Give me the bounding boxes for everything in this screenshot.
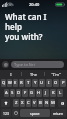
- staticText: T: [27, 80, 30, 86]
- staticText: W: [8, 80, 12, 86]
- button[interactable]: K: [50, 89, 56, 97]
- button[interactable]: P: [60, 79, 66, 87]
- staticText: E: [14, 80, 17, 86]
- staticText: The: [30, 72, 37, 77]
- button[interactable]: S: [10, 89, 15, 97]
- staticText: O: [54, 80, 58, 86]
- staticText: B: [39, 100, 42, 106]
- button[interactable]: Y: [32, 79, 38, 87]
- staticText: K: [52, 90, 55, 96]
- button[interactable]: space: [20, 109, 50, 117]
- staticText: U: [40, 80, 44, 86]
- button[interactable]: E: [13, 79, 18, 87]
- staticText: H: [37, 90, 41, 96]
- button[interactable]: F: [22, 89, 28, 97]
- staticText: G: [30, 90, 34, 96]
- staticText: X: [21, 100, 24, 106]
- button[interactable]: Type to Siri: [11, 61, 64, 68]
- staticText: space: [30, 111, 40, 116]
- button[interactable]: "I'm": [45, 70, 67, 78]
- button[interactable]: Siri: [2, 61, 9, 68]
- staticText: Type to Siri: [14, 62, 35, 67]
- button[interactable]: I: [46, 79, 52, 87]
- button[interactable]: U: [39, 79, 45, 87]
- button[interactable]: X: [20, 99, 25, 107]
- staticText: F: [24, 90, 27, 96]
- staticText: A: [5, 90, 8, 96]
- staticText: I: [48, 80, 50, 86]
- button[interactable]: G: [29, 89, 35, 97]
- button[interactable]: O: [53, 79, 59, 87]
- button[interactable]: M: [50, 99, 55, 107]
- staticText: P: [62, 80, 65, 86]
- button[interactable]: A: [4, 89, 9, 97]
- button[interactable]: 123: [1, 109, 11, 117]
- button[interactable]: Emoji: [12, 109, 19, 117]
- button[interactable]: N: [44, 99, 49, 107]
- button[interactable]: Shift: [1, 99, 10, 107]
- staticText: D: [17, 90, 21, 96]
- staticText: 20:40: [29, 2, 40, 7]
- button[interactable]: L: [57, 89, 63, 97]
- staticText: Z: [15, 100, 18, 106]
- button[interactable]: B: [38, 99, 43, 107]
- button[interactable]: J: [43, 89, 49, 97]
- staticText: V: [33, 100, 36, 106]
- button[interactable]: R: [19, 79, 24, 87]
- staticText: M: [51, 100, 55, 106]
- button[interactable]: V: [32, 99, 37, 107]
- staticText: I: [10, 72, 12, 77]
- button[interactable]: Q: [1, 79, 6, 87]
- staticText: R: [20, 80, 23, 86]
- button[interactable]: T: [25, 79, 31, 87]
- staticText: J: [45, 90, 47, 96]
- staticText: S: [11, 90, 14, 96]
- button[interactable]: I: [0, 70, 21, 78]
- staticText: Q: [2, 80, 6, 86]
- button[interactable]: W: [7, 79, 12, 87]
- staticText: return: [53, 111, 64, 116]
- staticText: 123: [3, 111, 9, 116]
- button[interactable]: D: [16, 89, 21, 97]
- staticText: "I'm": [51, 72, 61, 77]
- button[interactable]: The: [22, 70, 44, 78]
- staticText: N: [45, 100, 49, 106]
- button[interactable]: Z: [13, 99, 19, 107]
- staticText: What can I help you with?: [5, 11, 63, 42]
- staticText: Y: [34, 80, 37, 86]
- button[interactable]: return: [51, 109, 66, 117]
- button[interactable]: Delete: [58, 99, 66, 107]
- staticText: L: [59, 90, 62, 96]
- staticText: C: [27, 100, 30, 106]
- button[interactable]: H: [36, 89, 42, 97]
- button[interactable]: C: [26, 99, 31, 107]
